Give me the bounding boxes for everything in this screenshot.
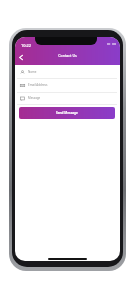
button[interactable]: Send Message bbox=[19, 107, 115, 119]
button[interactable]: Back bbox=[15, 50, 26, 65]
staticText: Email Address bbox=[28, 83, 48, 87]
button[interactable]: Name bbox=[15, 66, 120, 78]
button[interactable]: Message bbox=[15, 92, 120, 104]
staticText: Message bbox=[28, 96, 41, 100]
staticText: 10:22 bbox=[21, 43, 31, 48]
button[interactable]: Email Address bbox=[15, 79, 120, 91]
staticText: Contact Us bbox=[15, 53, 120, 58]
staticText: Send Message bbox=[56, 111, 78, 115]
staticText: Name bbox=[28, 70, 37, 74]
